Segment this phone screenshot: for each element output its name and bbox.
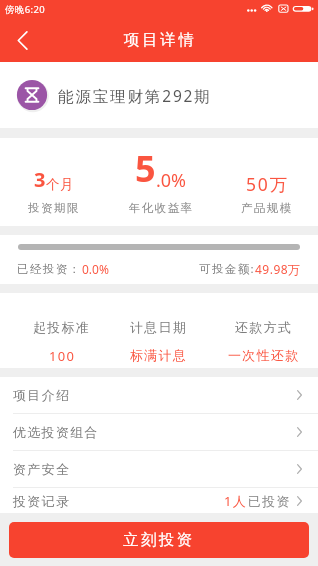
staticText: 傍晚6:20 [5, 3, 46, 16]
button[interactable]: 投资记录 [0, 488, 318, 513]
staticText: 已经投资： [17, 262, 82, 276]
staticText: 计息日期 [130, 319, 188, 335]
staticText: 5 [135, 144, 156, 193]
staticText: 一次性还款 [228, 347, 300, 363]
staticText: .0% [156, 168, 187, 193]
staticText: 3 [34, 166, 46, 193]
staticText: 产品规模 [241, 201, 293, 215]
staticText: 标满计息 [130, 347, 188, 363]
button[interactable]: 项目介绍 [0, 377, 318, 413]
staticText: 50万 [246, 172, 289, 196]
staticText: 起投标准 [33, 319, 91, 335]
button[interactable]: 资产安全 [0, 451, 318, 487]
staticText: 个月 [46, 176, 75, 193]
staticText: 可投金额: [199, 261, 255, 277]
staticText: 资产安全 [13, 461, 71, 477]
staticText: 项目详情 [124, 30, 197, 50]
staticText: 49.98万 [255, 261, 301, 277]
staticText: 能源宝理财第292期 [58, 85, 212, 106]
button[interactable]: 立刻投资 [9, 522, 309, 558]
staticText: 0.0% [82, 261, 109, 277]
staticText: 100 [49, 347, 76, 365]
button[interactable]: 优选投资组合 [0, 414, 318, 450]
staticText: 还款方式 [235, 319, 293, 335]
button[interactable]: Back [0, 18, 44, 62]
staticText: 优选投资组合 [13, 424, 99, 440]
staticText: 项目介绍 [13, 387, 71, 403]
staticText: 已投资 [248, 493, 291, 509]
staticText: 投资记录 [13, 493, 71, 509]
staticText: 1人 [224, 492, 248, 510]
staticText: 投资期限 [28, 201, 80, 215]
staticText: 立刻投资 [123, 530, 195, 550]
staticText: 年化收益率 [129, 201, 194, 215]
